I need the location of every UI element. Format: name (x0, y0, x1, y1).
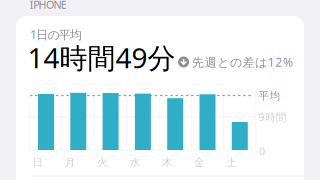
staticText: 先週との差は12% (192, 54, 293, 70)
staticText: 金 (194, 156, 205, 169)
staticText: 9 時間 (258, 110, 287, 124)
button[interactable]: 先週との差は12% (178, 54, 293, 70)
staticText: 木 (162, 156, 173, 169)
staticText: IPHONE (30, 0, 67, 12)
staticText: 日 (32, 156, 43, 169)
staticText: 平均 (258, 89, 280, 102)
staticText: 土 (226, 156, 237, 169)
staticText: 0 (259, 144, 265, 158)
staticText: 1日の平均 (30, 26, 82, 42)
staticText: 水 (129, 156, 140, 169)
staticText: 14時間49分 (27, 39, 175, 76)
staticText: 月 (65, 156, 76, 169)
staticText: 火 (97, 156, 108, 169)
